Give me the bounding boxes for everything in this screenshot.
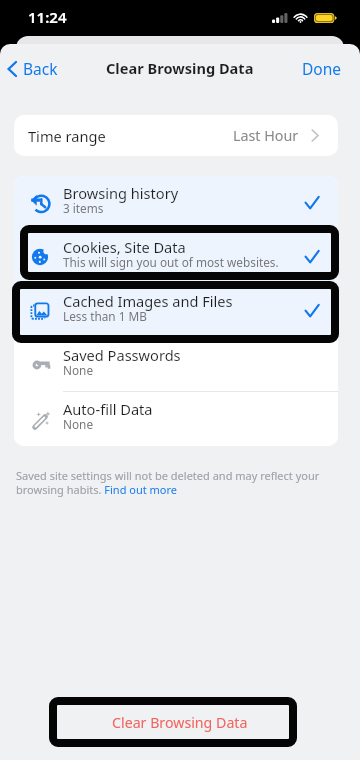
button[interactable]: Back bbox=[0, 51, 68, 86]
button[interactable]: Cached Images and Files bbox=[14, 284, 338, 338]
staticText: None bbox=[63, 416, 94, 432]
staticText: Browsing history bbox=[63, 183, 179, 203]
staticText: Last Hour bbox=[233, 126, 299, 145]
other: Selected bbox=[305, 196, 319, 210]
staticText: This will sign you out of most websites. bbox=[63, 254, 279, 270]
staticText: Cached Images and Files bbox=[63, 291, 233, 311]
button[interactable]: Browsing history bbox=[14, 176, 338, 230]
button[interactable]: Cookies, Site Data bbox=[14, 230, 338, 284]
staticText: 3 items bbox=[63, 200, 104, 216]
staticText: Clear Browsing Data bbox=[112, 713, 248, 732]
button[interactable]: Clear Browsing Data bbox=[0, 697, 360, 747]
staticText: Less than 1 MB bbox=[63, 308, 147, 324]
button[interactable]: Saved Passwords bbox=[14, 338, 338, 392]
other: Selected bbox=[305, 304, 319, 318]
staticText: 11:24 bbox=[28, 7, 67, 27]
staticText: Cookies, Site Data bbox=[63, 237, 186, 257]
other: Selected bbox=[305, 250, 319, 264]
staticText: Saved Passwords bbox=[63, 345, 181, 365]
staticText: None bbox=[63, 362, 94, 378]
button[interactable]: Auto-fill Data bbox=[14, 392, 338, 446]
staticText: Clear Browsing Data bbox=[106, 58, 254, 78]
staticText: Time range bbox=[28, 126, 106, 146]
staticText: Saved site settings will not be deleted … bbox=[16, 468, 338, 497]
button[interactable]: Time range bbox=[14, 115, 338, 156]
staticText: Auto-fill Data bbox=[63, 399, 153, 419]
button[interactable]: Done bbox=[288, 50, 360, 87]
staticText: Back bbox=[23, 58, 58, 79]
